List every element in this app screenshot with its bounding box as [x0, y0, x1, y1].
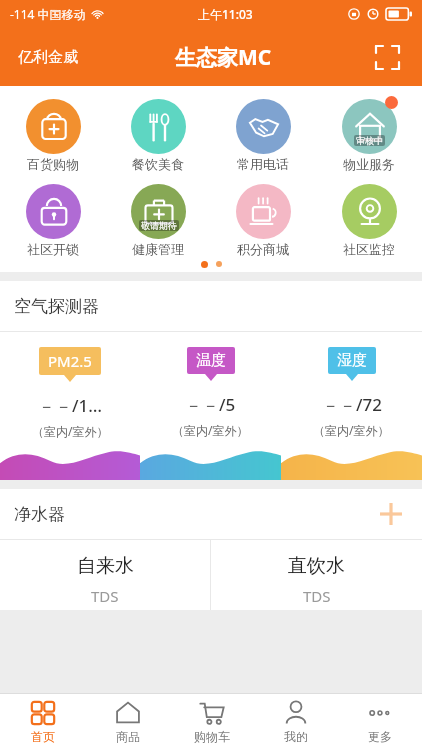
button[interactable]: PM2.5: [0, 347, 140, 439]
button[interactable]: 直饮水: [211, 540, 422, 610]
staticText: 空气探测器: [14, 296, 99, 317]
button[interactable]: 百货购物: [0, 95, 105, 173]
staticText: 社区监控: [343, 241, 395, 257]
staticText: 生态家MC: [175, 43, 272, 72]
button[interactable]: 我的: [254, 694, 338, 750]
staticText: 健康管理: [132, 241, 184, 257]
staticText: 首页: [31, 729, 55, 744]
staticText: TDS: [91, 586, 119, 606]
button[interactable]: 社区监控: [316, 180, 422, 258]
staticText: 敬请期待: [141, 220, 177, 231]
staticText: 购物车: [194, 729, 230, 744]
staticText: 审核中: [356, 135, 383, 146]
staticText: TDS: [303, 586, 331, 606]
staticText: 温度: [196, 351, 226, 370]
staticText: 餐饮美食: [132, 156, 184, 172]
staticText: 商品: [116, 729, 140, 744]
staticText: （室内/室外）: [32, 423, 109, 439]
button[interactable]: 空气探测器: [0, 281, 422, 331]
button[interactable]: 敬请期待: [105, 180, 210, 258]
staticText: （室内/室外）: [313, 422, 390, 438]
staticText: 百货购物: [27, 156, 79, 172]
staticText: 社区开锁: [27, 241, 79, 257]
button[interactable]: 亿利金威: [18, 42, 78, 73]
button[interactable]: 常用电话: [210, 95, 316, 173]
button[interactable]: 净水器: [0, 489, 422, 539]
button[interactable]: 扫一扫: [370, 40, 404, 74]
staticText: 更多: [368, 729, 392, 744]
button[interactable]: 温度: [140, 347, 281, 438]
button[interactable]: 首页: [0, 694, 85, 750]
button[interactable]: 餐饮美食: [105, 95, 210, 173]
staticText: －－/72: [322, 393, 382, 416]
staticText: 亿利金威: [18, 48, 78, 67]
staticText: -114 中国移动: [10, 6, 86, 22]
button[interactable]: 商品: [85, 694, 170, 750]
button[interactable]: 添加净水器: [376, 499, 406, 529]
staticText: 净水器: [14, 504, 65, 525]
button[interactable]: 自来水: [0, 540, 210, 610]
button[interactable]: 积分商城: [210, 180, 316, 258]
staticText: （室内/室外）: [172, 422, 249, 438]
button[interactable]: 购物车: [170, 694, 254, 750]
staticText: 积分商城: [237, 241, 289, 257]
staticText: 直饮水: [288, 554, 345, 578]
staticText: 湿度: [337, 351, 367, 370]
staticText: 我的: [284, 729, 308, 744]
staticText: 自来水: [77, 554, 134, 578]
button[interactable]: 社区开锁: [0, 180, 105, 258]
button[interactable]: 湿度: [281, 347, 422, 438]
staticText: 物业服务: [343, 156, 395, 172]
staticText: PM2.5: [48, 351, 92, 371]
staticText: －－/5: [185, 393, 236, 416]
staticText: －－/1…: [38, 394, 103, 417]
button[interactable]: 审核中: [316, 95, 422, 173]
button[interactable]: 更多: [338, 694, 422, 750]
staticText: 常用电话: [237, 156, 289, 172]
staticText: 上午11:03: [198, 6, 253, 22]
